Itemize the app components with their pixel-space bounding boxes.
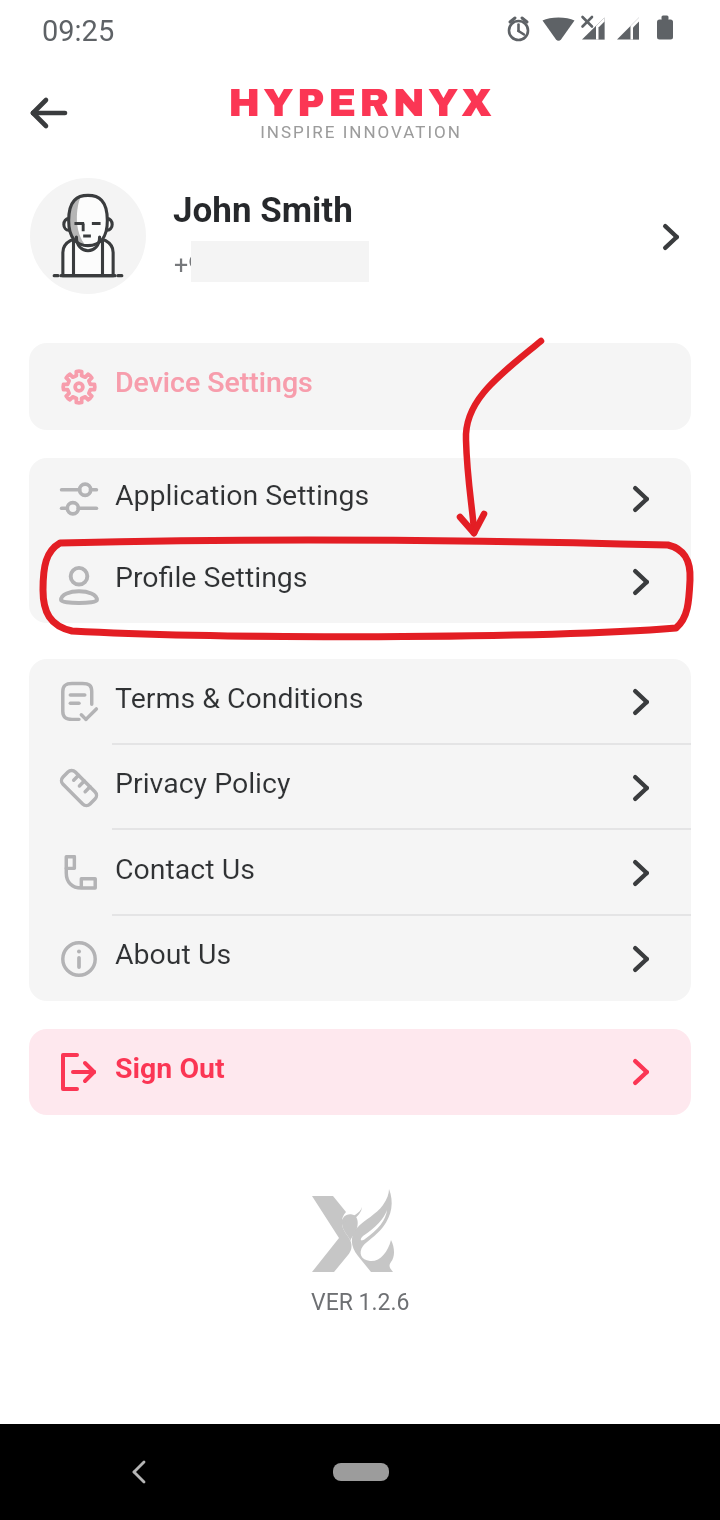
other: Back <box>118 1450 160 1492</box>
button[interactable]: Application Settings <box>29 458 691 540</box>
staticText: 09:25 <box>42 14 115 48</box>
staticText: Profile Settings <box>115 561 308 594</box>
staticText: +9 <box>174 251 203 280</box>
staticText: About Us <box>115 938 232 971</box>
button[interactable]: Back <box>16 86 82 140</box>
staticText: Application Settings <box>115 479 370 512</box>
button[interactable]: Device Settings <box>29 343 691 430</box>
staticText: INSPIRE INNOVATION <box>260 122 462 142</box>
staticText: Contact Us <box>115 853 255 886</box>
button[interactable]: Privacy Policy <box>29 745 691 830</box>
button[interactable]: Terms & Conditions <box>29 659 691 745</box>
staticText: HYPERNYX <box>228 82 495 124</box>
button[interactable]: Profile Settings <box>29 540 691 623</box>
staticText: John Smith <box>173 190 353 231</box>
staticText: Sign Out <box>115 1052 225 1085</box>
button[interactable]: Sign Out <box>29 1029 691 1115</box>
staticText: Privacy Policy <box>115 767 291 800</box>
staticText: Terms & Conditions <box>115 682 364 715</box>
staticText: VER 1.2.6 <box>311 1289 410 1316</box>
button[interactable]: John Smith <box>0 172 720 302</box>
button[interactable]: Contact Us <box>29 830 691 916</box>
staticText: Device Settings <box>115 366 313 399</box>
button[interactable]: About Us <box>29 916 691 1001</box>
other: Home <box>333 1463 389 1481</box>
